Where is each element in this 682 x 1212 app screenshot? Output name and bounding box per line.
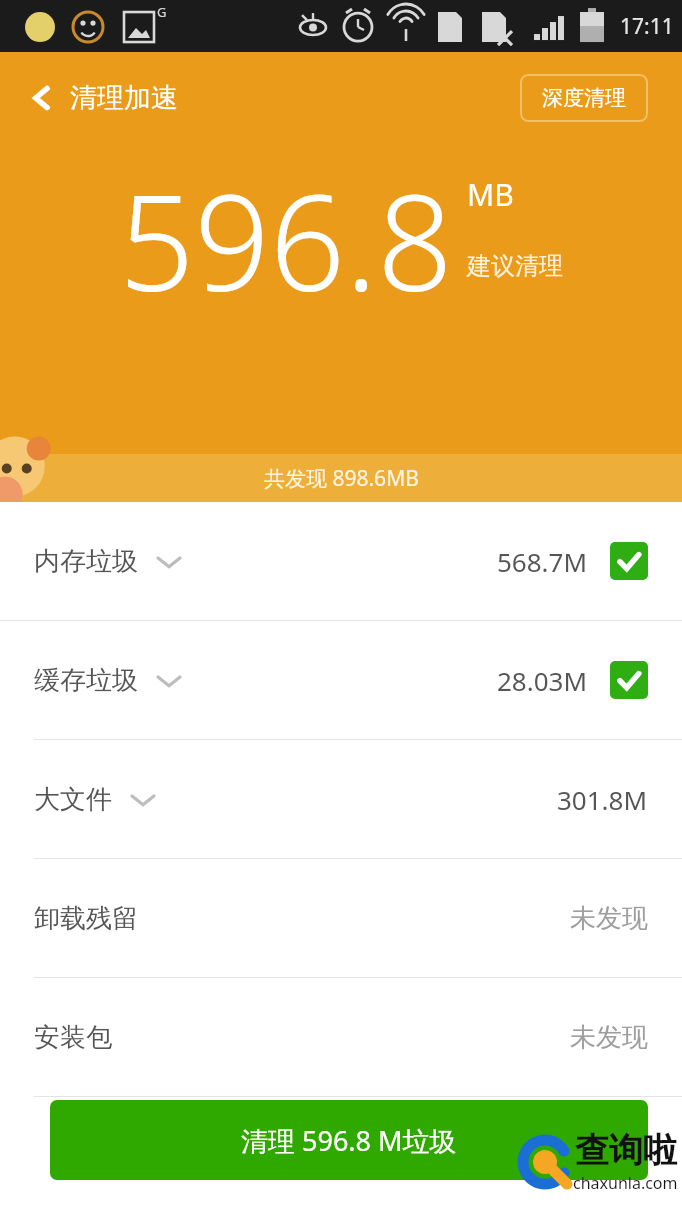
staticText: 清理加速: [70, 81, 178, 115]
staticText: G: [157, 3, 167, 21]
button[interactable]: Back: [0, 73, 192, 123]
staticText: 清理 596.8 M垃圾: [241, 1122, 457, 1159]
staticText: MB: [467, 174, 514, 215]
button[interactable]: 安装包: [0, 978, 682, 1096]
button[interactable]: 卸载残留: [0, 859, 682, 977]
staticText: 未发现: [570, 1021, 648, 1054]
staticText: 缓存垃圾: [34, 664, 138, 697]
staticText: 568.7M: [497, 544, 588, 579]
staticText: 内存垃圾: [34, 545, 138, 578]
staticText: 未发现: [570, 902, 648, 935]
staticText: 28.03M: [497, 663, 588, 698]
staticText: 596.8: [119, 150, 453, 330]
button[interactable]: 内存垃圾: [0, 502, 682, 620]
other: Back: [30, 83, 52, 113]
staticText: 大文件: [34, 783, 112, 816]
button[interactable]: 清理 596.8 M垃圾: [50, 1100, 648, 1180]
staticText: 查询啦: [575, 1129, 677, 1172]
staticText: 深度清理: [542, 85, 626, 111]
button[interactable]: Selected: [610, 542, 648, 580]
staticText: 卸载残留: [34, 902, 138, 935]
button[interactable]: 大文件: [0, 740, 682, 858]
button[interactable]: 缓存垃圾: [0, 621, 682, 739]
staticText: 301.8M: [557, 782, 648, 817]
staticText: 17:11: [620, 12, 674, 41]
staticText: 建议清理: [467, 251, 563, 281]
button[interactable]: 深度清理: [520, 74, 648, 122]
staticText: 共发现 898.6MB: [264, 464, 419, 493]
staticText: chaxunla.com: [573, 1172, 678, 1194]
button[interactable]: Selected: [610, 661, 648, 699]
staticText: 安装包: [34, 1021, 112, 1054]
